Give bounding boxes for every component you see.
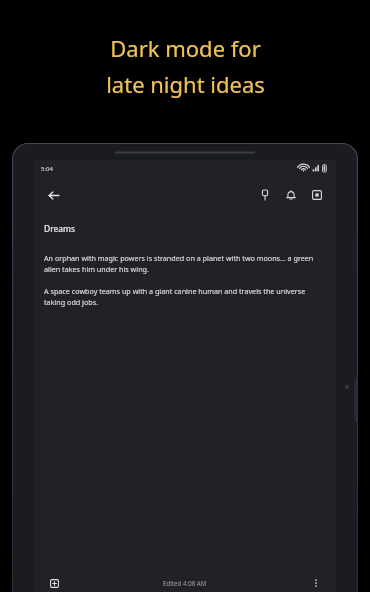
button[interactable]: Reminder <box>278 182 304 208</box>
button[interactable]: Back <box>40 182 66 208</box>
staticText: Edited 4:08 AM <box>163 579 207 587</box>
staticText: Dark mode for <box>110 33 261 63</box>
button[interactable]: Pin <box>252 182 278 208</box>
button[interactable]: Archive <box>304 182 330 208</box>
staticText: A space cowboy teams up with a giant can… <box>44 286 326 308</box>
staticText: Dreams <box>44 223 76 235</box>
button[interactable]: More options <box>304 571 328 592</box>
staticText: late night ideas <box>106 69 265 99</box>
button[interactable]: Add <box>42 571 66 592</box>
staticText: An orphan with magic powers is stranded … <box>44 253 326 275</box>
staticText: 5:04 <box>41 165 53 173</box>
